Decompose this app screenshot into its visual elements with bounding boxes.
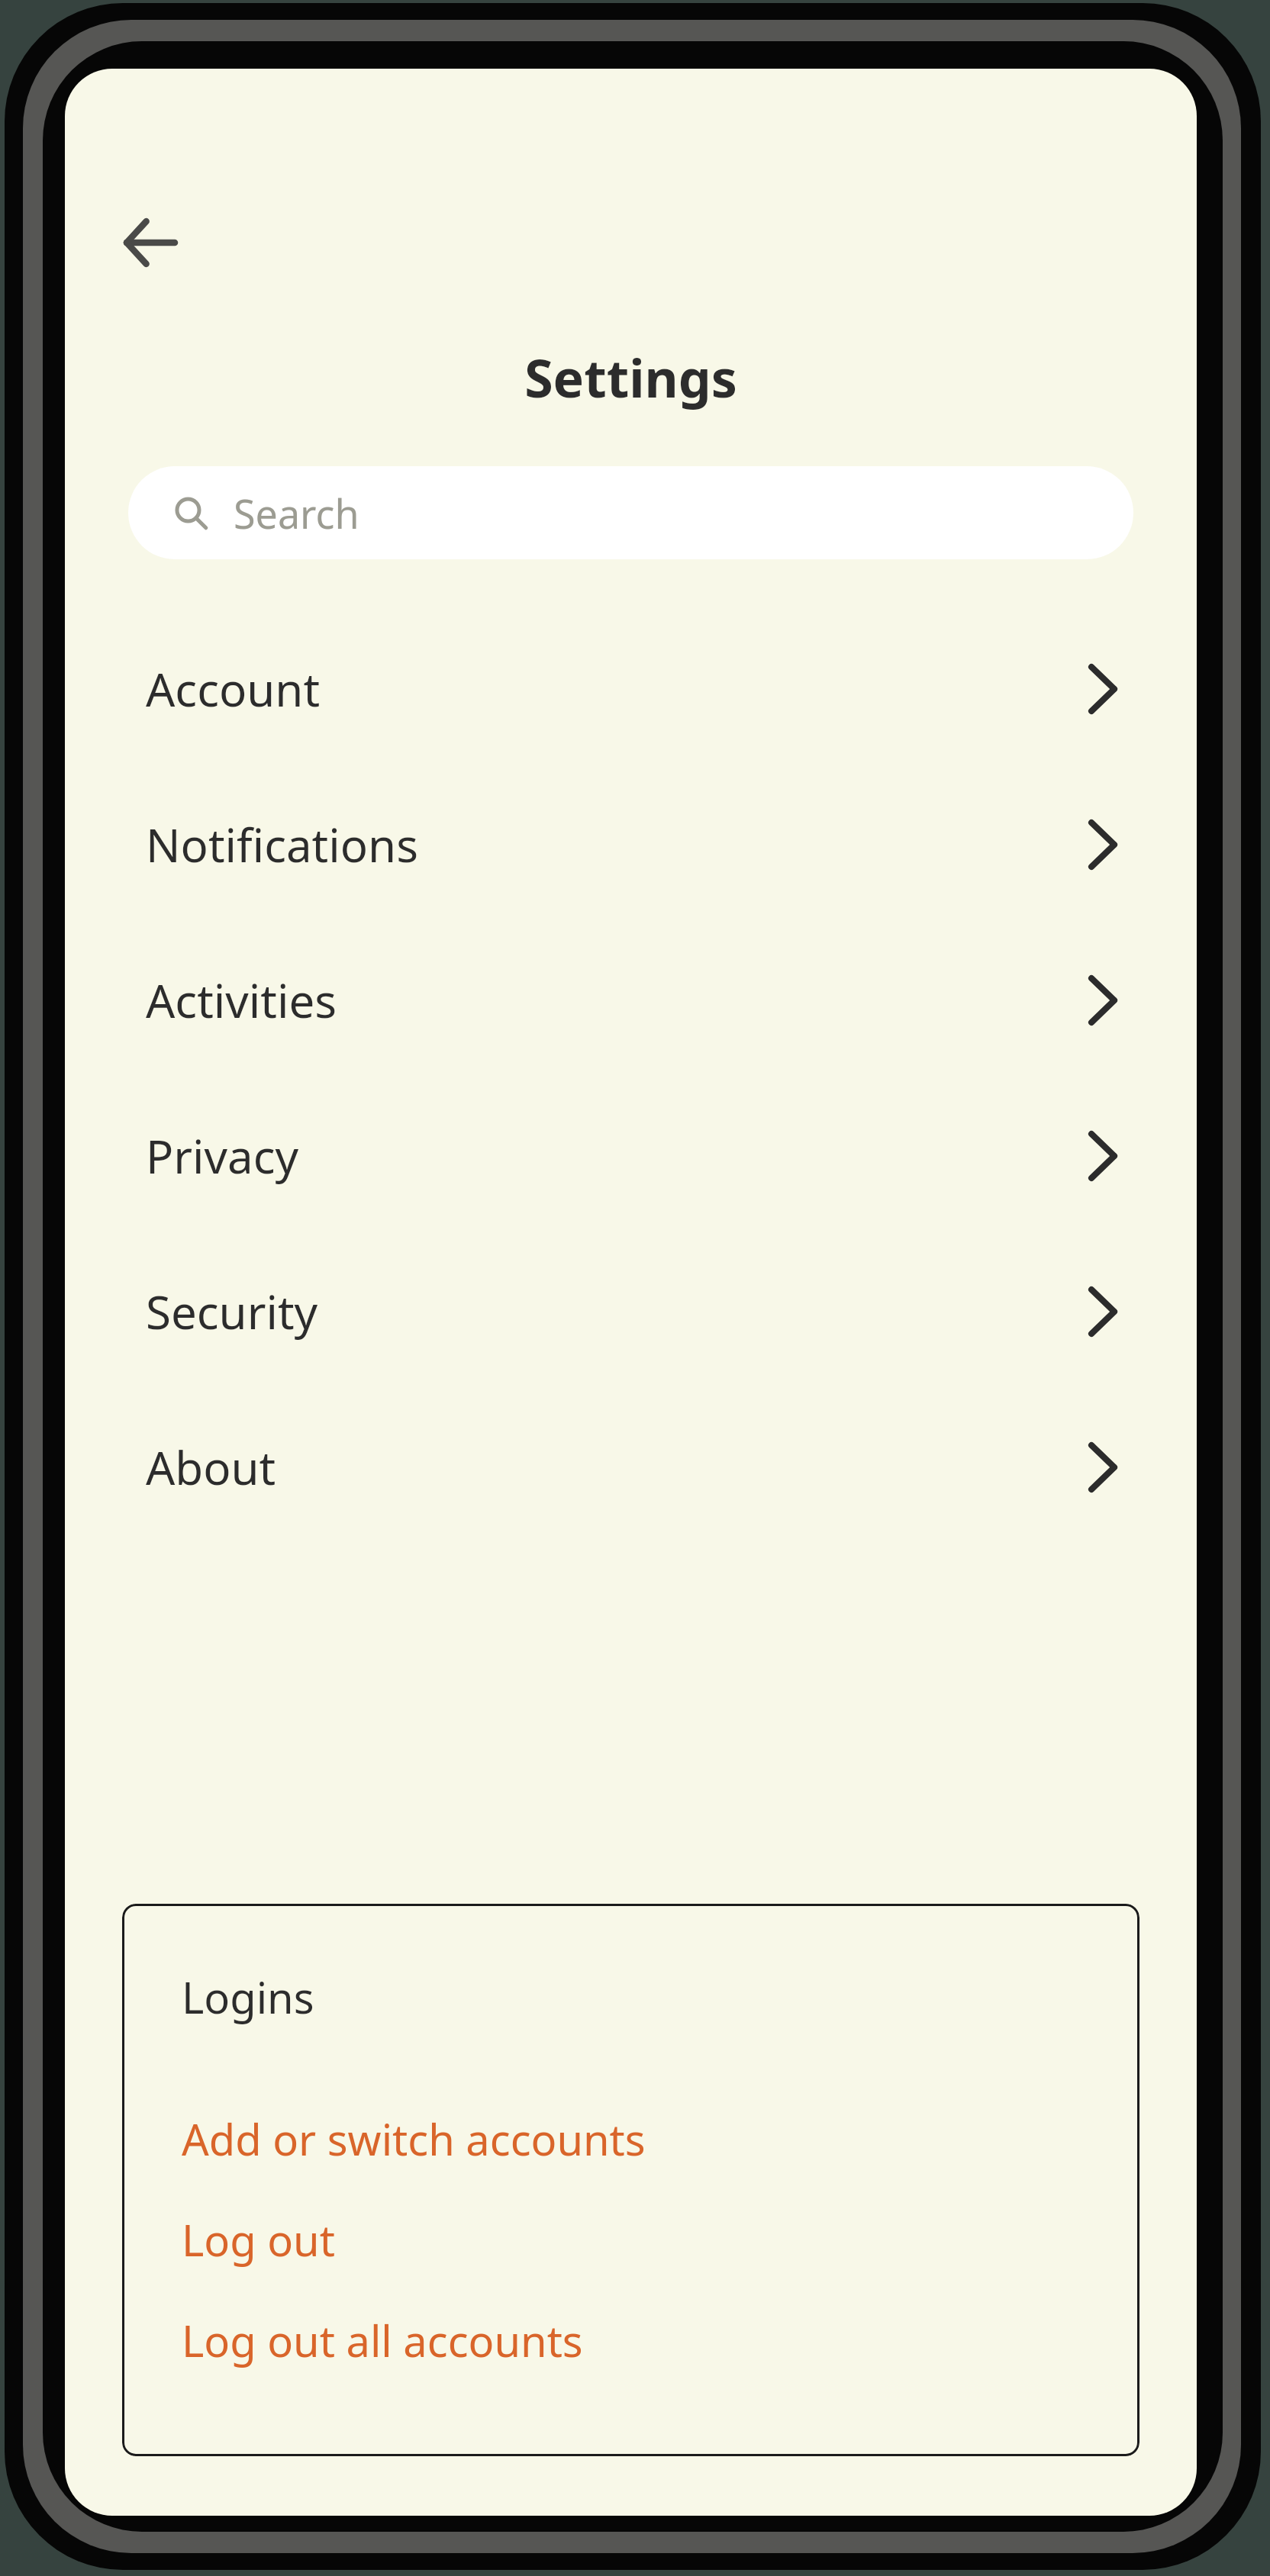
- button[interactable]: Security: [65, 1234, 1197, 1389]
- staticText: Privacy: [146, 1125, 299, 1187]
- staticText: Activities: [146, 969, 337, 1032]
- button[interactable]: Privacy: [65, 1078, 1197, 1234]
- button[interactable]: Back: [98, 198, 199, 287]
- staticText: Security: [146, 1280, 318, 1343]
- staticText: Settings: [65, 342, 1197, 413]
- button[interactable]: Log out: [122, 2194, 1139, 2285]
- button[interactable]: About: [65, 1389, 1197, 1545]
- staticText: Notifications: [146, 813, 418, 876]
- staticText: Logins: [182, 1968, 314, 2026]
- staticText: Log out: [182, 2211, 335, 2268]
- staticText: Add or switch accounts: [182, 2110, 646, 2168]
- button[interactable]: Search: [128, 466, 1133, 559]
- staticText: Log out all accounts: [182, 2311, 583, 2369]
- staticText: Account: [146, 658, 321, 720]
- button[interactable]: Account: [65, 611, 1197, 767]
- button[interactable]: Log out all accounts: [122, 2294, 1139, 2386]
- button[interactable]: Activities: [65, 923, 1197, 1078]
- button[interactable]: Add or switch accounts: [122, 2093, 1139, 2185]
- staticText: About: [146, 1436, 276, 1499]
- staticText: Search: [234, 486, 359, 540]
- button[interactable]: Notifications: [65, 767, 1197, 923]
